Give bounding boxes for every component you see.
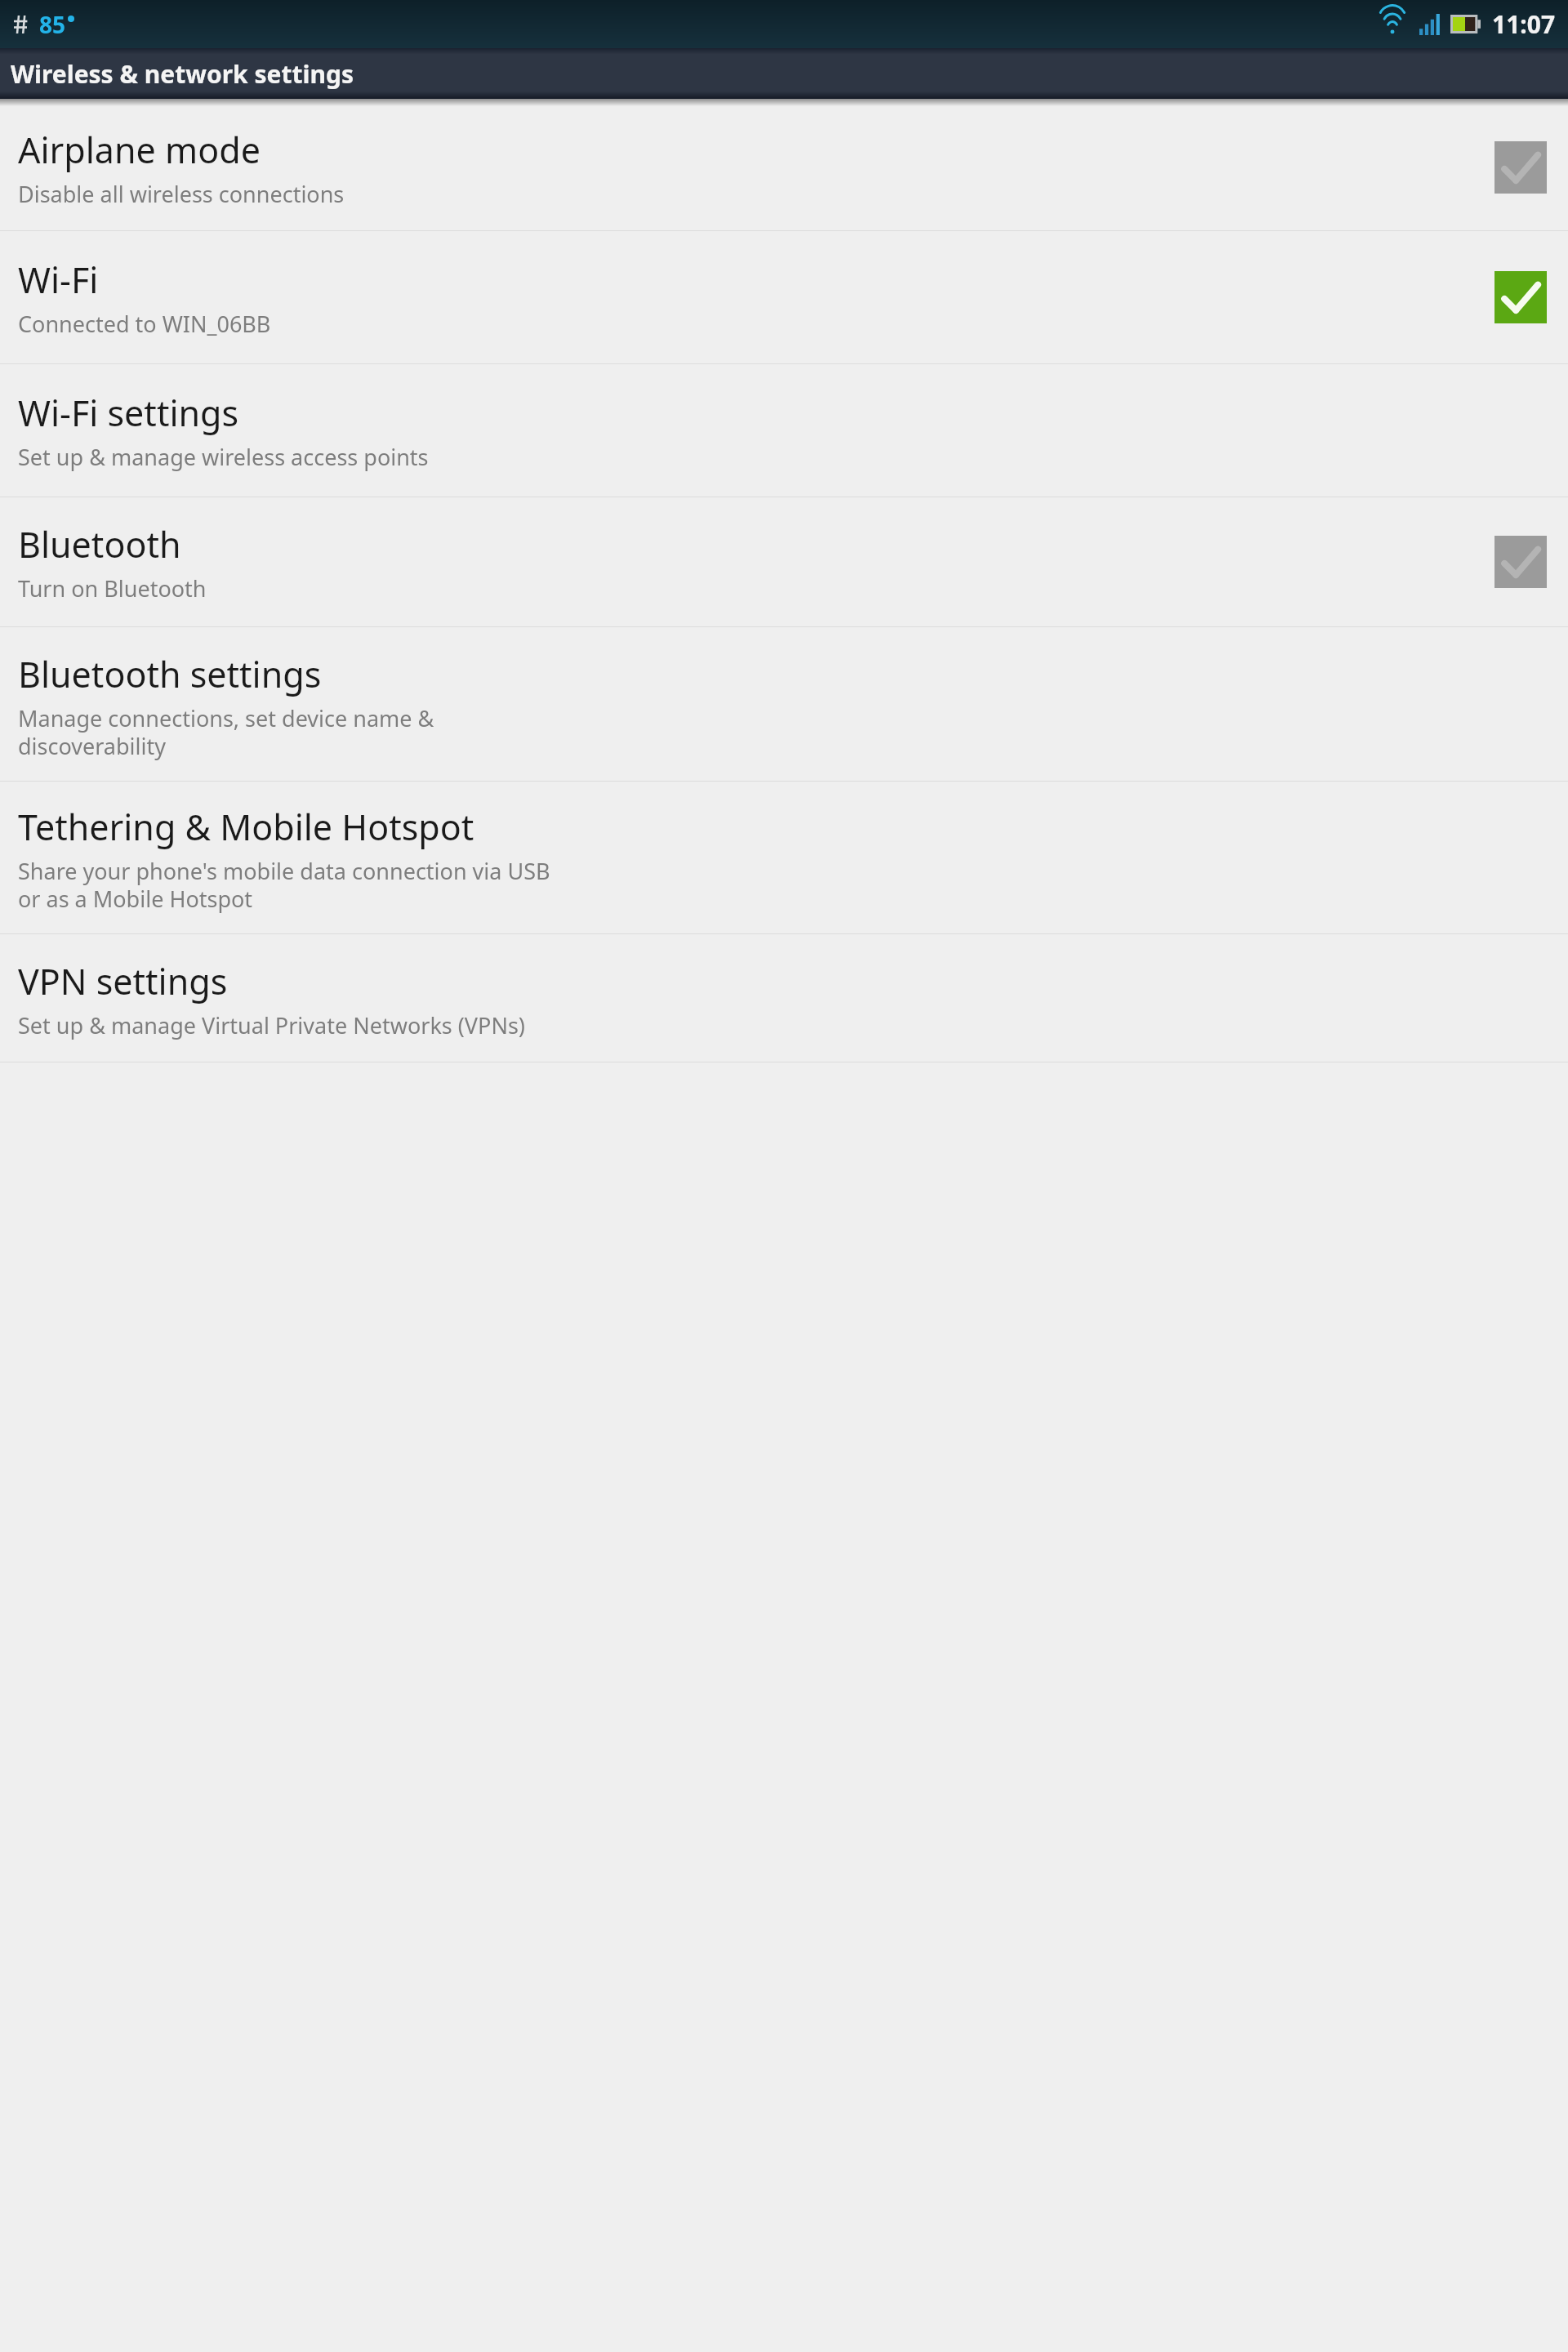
button[interactable]: Bluetooth xyxy=(0,497,1568,626)
staticText: Wi-Fi xyxy=(18,256,99,304)
other: Unchecked xyxy=(1494,141,1547,194)
staticText: Wi-Fi settings xyxy=(18,389,239,437)
staticText: 85 xyxy=(39,9,66,40)
other: Checked xyxy=(1494,271,1547,323)
staticText: Manage connections, set device name & di… xyxy=(18,703,434,761)
staticText: Set up & manage wireless access points xyxy=(18,442,429,472)
staticText: Tethering & Mobile Hotspot xyxy=(18,803,474,851)
button[interactable]: VPN settings xyxy=(0,934,1568,1062)
button[interactable]: Wi-Fi settings xyxy=(0,364,1568,497)
staticText: Bluetooth xyxy=(18,520,181,568)
staticText: Set up & manage Virtual Private Networks… xyxy=(18,1010,525,1040)
staticText: Share your phone's mobile data connectio… xyxy=(18,856,550,914)
button[interactable]: Tethering & Mobile Hotspot xyxy=(0,782,1568,933)
button[interactable]: Airplane mode xyxy=(0,106,1568,230)
staticText: Bluetooth settings xyxy=(18,650,322,698)
staticText: Airplane mode xyxy=(18,126,261,174)
button[interactable]: Bluetooth settings xyxy=(0,627,1568,781)
other: Unchecked xyxy=(1494,536,1547,588)
staticText: Turn on Bluetooth xyxy=(18,573,207,604)
button[interactable]: Wi-Fi xyxy=(0,231,1568,363)
staticText: VPN settings xyxy=(18,957,228,1005)
staticText: 11:07 xyxy=(1492,7,1556,41)
staticText: Connected to WIN_06BB xyxy=(18,309,271,339)
staticText: Disable all wireless connections xyxy=(18,179,345,209)
staticText: Wireless & network settings xyxy=(11,57,354,91)
